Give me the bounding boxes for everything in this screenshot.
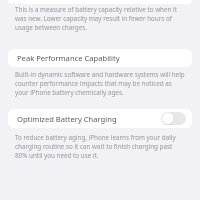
staticText: To reduce battery aging, iPhone learns f… (15, 133, 185, 160)
staticText: Peak Performance Capability (17, 53, 120, 63)
staticText: Optimized Battery Charging (17, 114, 117, 124)
button[interactable]: Optimized Battery Charging toggle (161, 112, 186, 125)
button[interactable]: Peak Performance Capability (8, 49, 192, 67)
staticText: Built-in dynamic software and hardware s… (15, 70, 185, 97)
button[interactable]: Optimized Battery Charging (8, 109, 192, 128)
staticText: This is a measure of battery capacity re… (15, 5, 185, 32)
